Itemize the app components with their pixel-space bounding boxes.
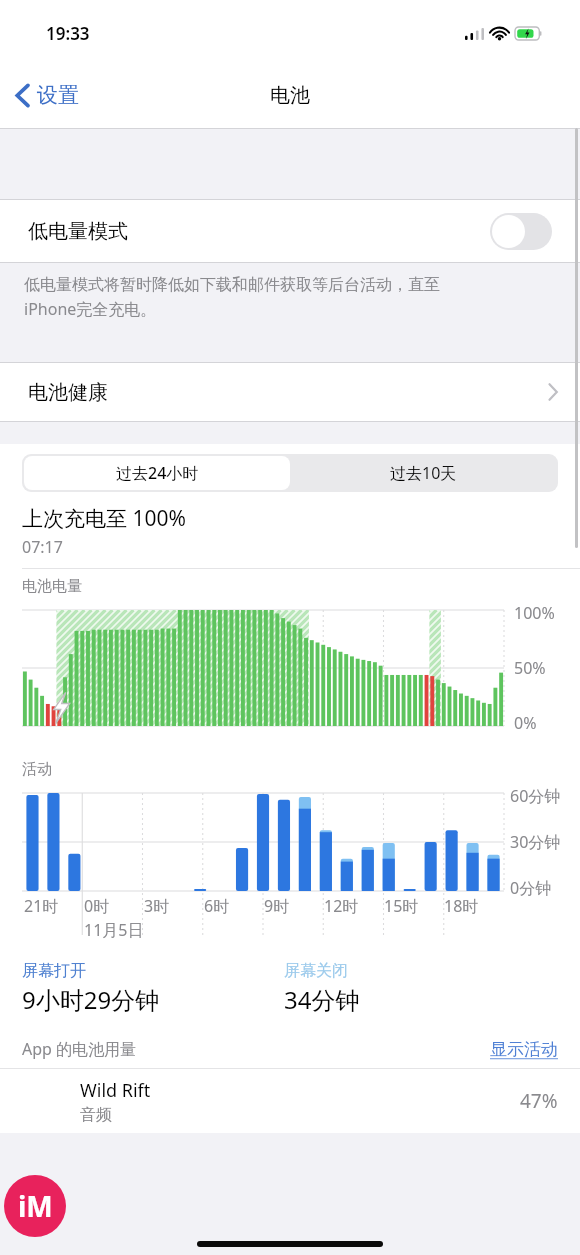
staticText: 0分钟 (510, 877, 552, 899)
button[interactable]: 显示活动 (490, 1039, 558, 1060)
staticText: 电池电量 (22, 577, 82, 596)
staticText: 50% (514, 657, 546, 679)
staticText: 19:33 (46, 22, 90, 45)
staticText: 34分钟 (284, 983, 360, 1016)
button[interactable]: 低电量模式开关 (490, 213, 552, 250)
staticText: 屏幕关闭 (284, 961, 348, 981)
button[interactable]: 电池健康 (0, 363, 580, 421)
staticText: 过去10天 (390, 462, 457, 484)
staticText: 9时 (264, 895, 290, 917)
staticText: 11月5日 (84, 919, 144, 941)
staticText: iM (18, 1187, 53, 1225)
staticText: Wild Rift (80, 1078, 151, 1103)
staticText: 音频 (80, 1105, 112, 1125)
staticText: 上次充电至 100% (22, 504, 186, 533)
button[interactable]: 过去24小时 (24, 456, 290, 490)
staticText: 3时 (144, 895, 170, 917)
staticText: 电池健康 (28, 380, 548, 405)
staticText: 9小时29分钟 (22, 983, 160, 1016)
staticText: 47% (520, 1088, 558, 1114)
staticText: 低电量模式 (28, 219, 490, 244)
staticText: 0时 (84, 895, 110, 917)
staticText: 30分钟 (510, 831, 561, 853)
button[interactable]: 设置 (0, 76, 91, 114)
staticText: 18时 (444, 895, 479, 917)
button[interactable]: 过去10天 (290, 456, 556, 490)
staticText: 显示活动 (490, 1039, 558, 1060)
staticText: 15时 (384, 895, 419, 917)
staticText: 21时 (24, 895, 59, 917)
staticText: 电池 (270, 83, 310, 108)
button[interactable]: 低电量模式 (0, 200, 580, 262)
staticText: 100% (514, 602, 555, 624)
staticText: 设置 (37, 82, 79, 108)
staticText: 12时 (324, 895, 359, 917)
staticText: 低电量模式将暂时降低如下载和邮件获取等后台活动，直至 iPhone完全充电。 (24, 275, 440, 320)
staticText: 活动 (22, 760, 52, 779)
staticText: 60分钟 (510, 785, 561, 807)
staticText: 6时 (204, 895, 230, 917)
staticText: 过去24小时 (116, 462, 199, 484)
staticText: App 的电池用量 (22, 1038, 490, 1060)
button[interactable]: Wild Rift (0, 1069, 580, 1133)
staticText: 屏幕打开 (22, 961, 86, 981)
staticText: 0% (514, 712, 537, 734)
staticText: 07:17 (22, 536, 63, 558)
